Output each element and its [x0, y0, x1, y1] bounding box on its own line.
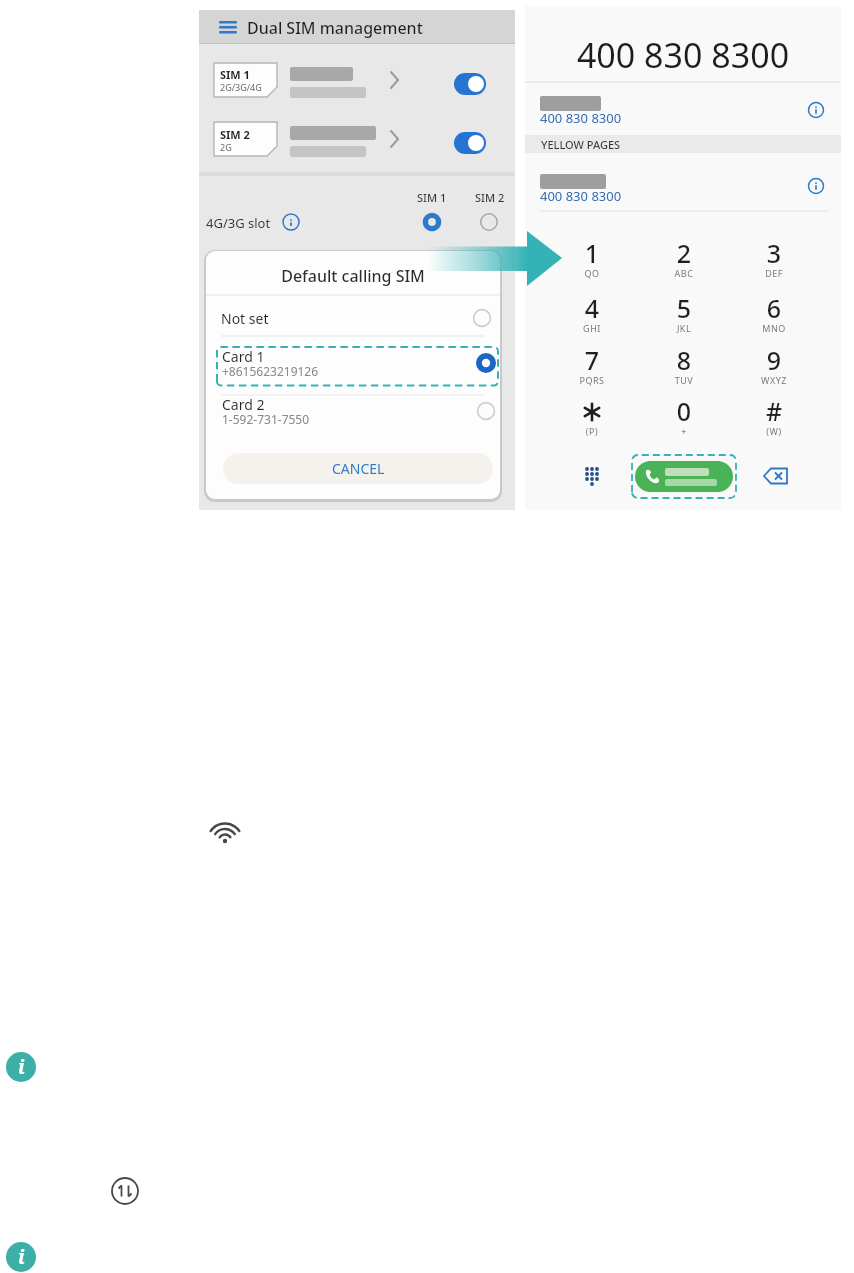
staticText: Card 1	[222, 347, 265, 366]
staticText: Not set	[221, 309, 269, 328]
staticText: JKL	[644, 322, 724, 334]
staticText: 1-592-731-7550	[222, 411, 310, 427]
staticText: 400 830 8300	[540, 187, 622, 205]
button[interactable]: 3	[734, 236, 814, 282]
button[interactable]: Card 2	[206, 391, 500, 431]
staticText: 2G/3G/4G	[220, 81, 262, 93]
staticText: 8	[644, 343, 724, 377]
staticText: WXYZ	[734, 374, 814, 386]
staticText: CANCEL	[332, 459, 385, 478]
staticText: Default calling SIM	[206, 265, 500, 287]
button[interactable]	[635, 461, 733, 492]
staticText: 4G/3G slot	[206, 214, 271, 232]
staticText: +	[644, 425, 724, 437]
staticText: 1	[552, 236, 632, 270]
staticText: TUV	[644, 374, 724, 386]
staticText: +8615623219126	[222, 363, 319, 379]
staticText: SIM 1	[417, 190, 447, 205]
staticText: SIM 2	[475, 190, 505, 205]
button[interactable]: Card 1	[206, 347, 500, 386]
button[interactable]: 8	[644, 343, 724, 389]
staticText: 400 830 8300	[540, 109, 622, 127]
button[interactable]	[760, 464, 792, 488]
button[interactable]	[525, 159, 795, 211]
staticText: MNO	[734, 322, 814, 334]
button[interactable]: #	[734, 394, 814, 440]
button[interactable]	[525, 88, 795, 135]
staticText: 400 830 8300	[525, 32, 841, 78]
staticText: SIM 1	[220, 67, 250, 82]
button[interactable]	[806, 176, 826, 196]
staticText	[552, 394, 632, 428]
staticText: SIM 2	[220, 127, 250, 142]
button[interactable]	[199, 205, 515, 239]
staticText: Dual SIM management	[247, 17, 423, 39]
button[interactable]	[576, 460, 608, 492]
staticText: (P)	[552, 425, 632, 437]
staticText: i	[18, 1244, 25, 1270]
button[interactable]: 2	[644, 236, 724, 282]
staticText: 4	[552, 291, 632, 325]
button[interactable]: 4	[552, 291, 632, 337]
button[interactable]: 9	[734, 343, 814, 389]
staticText: 2G	[220, 141, 232, 153]
staticText: i	[18, 1054, 25, 1080]
staticText: GHI	[552, 322, 632, 334]
staticText: 9	[734, 343, 814, 377]
button[interactable]: SIM 1	[199, 59, 515, 105]
staticText: Card 2	[222, 395, 265, 414]
button[interactable]: 1	[552, 236, 632, 282]
button[interactable]: SIM 2	[199, 118, 515, 164]
staticText: 7	[552, 343, 632, 377]
button[interactable]: 6	[734, 291, 814, 337]
staticText: QO	[552, 267, 632, 279]
staticText: DEF	[734, 267, 814, 279]
staticText: ABC	[644, 267, 724, 279]
staticText: 2	[644, 236, 724, 270]
button[interactable]	[806, 100, 826, 120]
staticText: #	[734, 394, 814, 428]
button[interactable]	[199, 10, 515, 44]
staticText: 5	[644, 291, 724, 325]
staticText: YELLOW PAGES	[541, 137, 621, 152]
button[interactable]: CANCEL	[223, 453, 493, 484]
staticText: PQRS	[552, 374, 632, 386]
staticText: (W)	[734, 425, 814, 437]
button[interactable]: Not set	[206, 299, 500, 336]
button[interactable]: 0	[644, 394, 724, 440]
button[interactable]: (P)	[552, 394, 632, 440]
staticText: 3	[734, 236, 814, 270]
staticText: 6	[734, 291, 814, 325]
staticText: 0	[644, 394, 724, 428]
button[interactable]: 7	[552, 343, 632, 389]
button[interactable]: 5	[644, 291, 724, 337]
